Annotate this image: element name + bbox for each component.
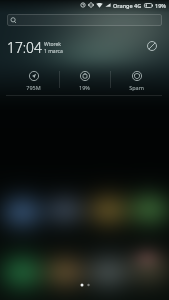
button[interactable]: 795M — [13, 71, 54, 95]
button[interactable]: 19% — [64, 71, 105, 95]
staticText: 17:04 — [7, 38, 42, 57]
staticText: 19% — [64, 84, 105, 91]
button[interactable]: Do not disturb — [142, 36, 161, 55]
button[interactable]: Spam — [116, 71, 157, 95]
staticText: 1 marca — [44, 48, 63, 55]
staticText: 19% — [155, 2, 166, 9]
staticText: 795M — [13, 84, 54, 91]
button[interactable]: Search — [7, 14, 162, 26]
staticText: Wtorek — [44, 41, 61, 48]
staticText: Orange 4G — [113, 2, 142, 9]
staticText: Spam — [116, 84, 157, 91]
